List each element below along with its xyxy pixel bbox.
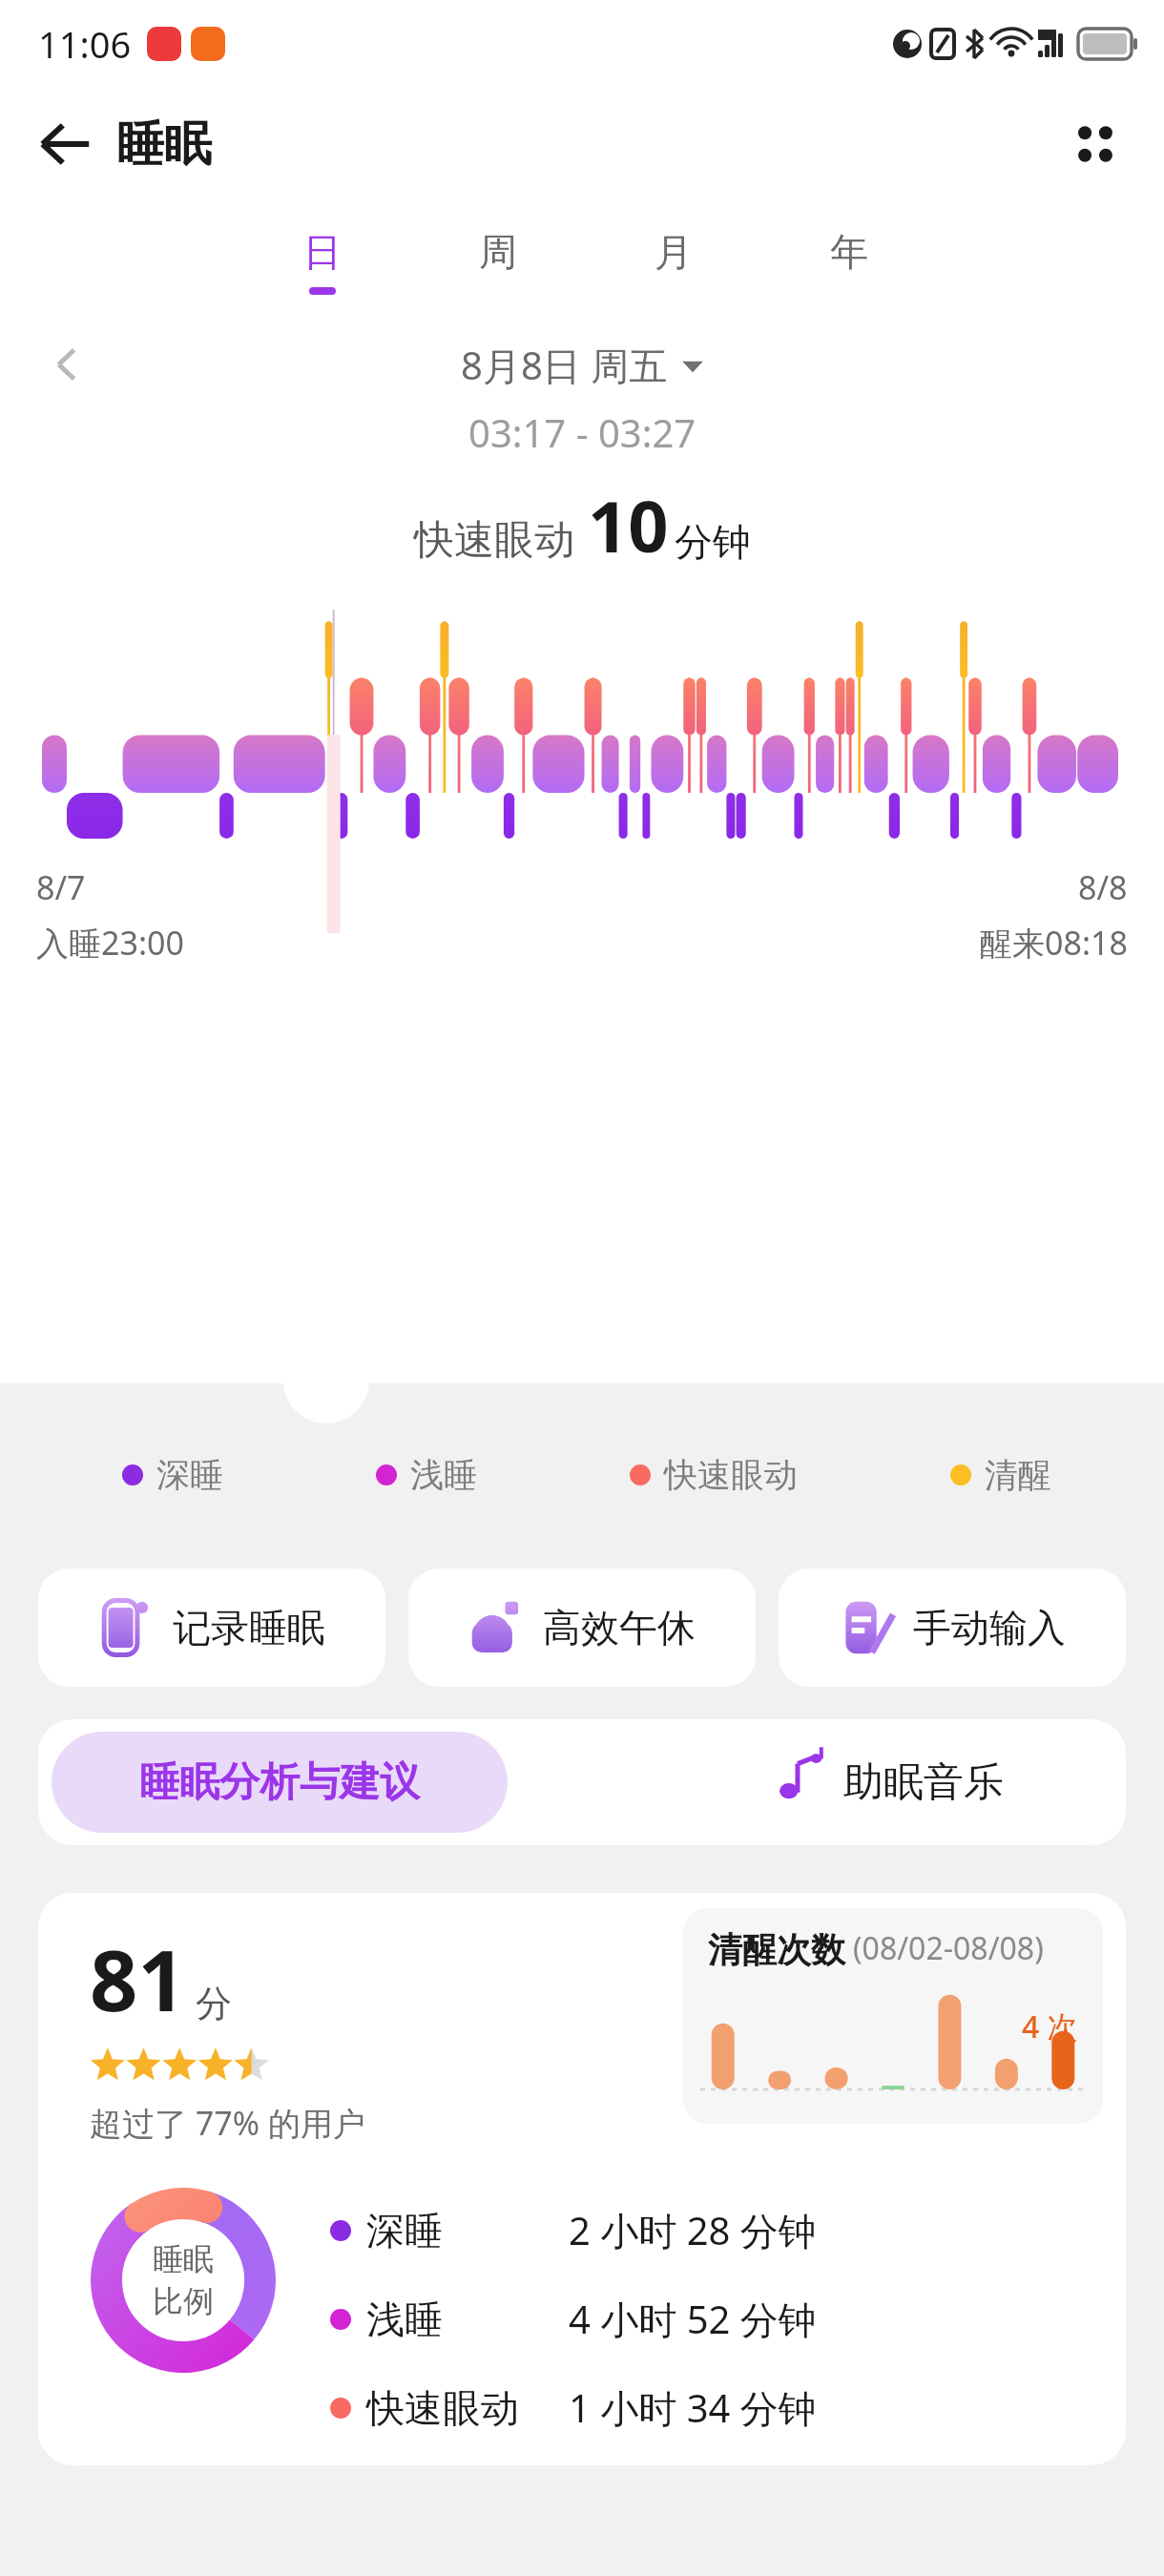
button[interactable]: 年 <box>821 228 878 295</box>
button[interactable]: 记录睡眠 <box>38 1568 385 1687</box>
staticText: 超过了 77% 的用户 <box>90 2101 365 2145</box>
staticText: 4 次 <box>1022 2005 1078 2047</box>
staticText: 睡眠 <box>153 2240 214 2278</box>
staticText: 8/7 <box>36 865 86 909</box>
staticText: 入睡23:00 <box>36 921 184 965</box>
staticText: 高效午休 <box>543 1604 696 1652</box>
staticText: 日 <box>303 228 342 276</box>
button[interactable]: 高效午休 <box>408 1568 756 1687</box>
staticText: 助眠音乐 <box>843 1757 1004 1808</box>
staticText: 手动输入 <box>913 1604 1066 1652</box>
staticText: 清醒 <box>985 1454 1051 1496</box>
button[interactable]: 月 <box>645 228 702 295</box>
staticText: 快速眼动 <box>664 1454 798 1496</box>
staticText: 记录睡眠 <box>173 1604 325 1652</box>
button[interactable]: 助眠音乐 <box>779 1756 1004 1808</box>
staticText: 11:06 <box>38 19 132 69</box>
staticText: 81 <box>90 1922 186 2036</box>
staticText: 月 <box>655 228 693 276</box>
staticText: 浅睡 <box>410 1454 477 1496</box>
staticText: 03:17 - 03:27 <box>468 406 696 458</box>
button[interactable]: More options <box>1051 100 1139 188</box>
button[interactable]: 睡眠分析与建议 <box>52 1732 508 1833</box>
staticText: 2 小时 28 分钟 <box>569 2204 817 2256</box>
staticText: (08/02-08/08) <box>853 1927 1044 1969</box>
staticText: 睡眠 <box>116 114 212 175</box>
staticText: 年 <box>830 228 868 276</box>
button[interactable]: 手动输入 <box>779 1568 1126 1687</box>
staticText: 深睡 <box>366 2207 443 2254</box>
staticText: 8月8日 周五 <box>461 339 668 391</box>
button[interactable]: Back <box>19 98 111 190</box>
staticText: 醒来08:18 <box>980 921 1128 965</box>
staticText: 1 小时 34 分钟 <box>569 2381 817 2434</box>
staticText: 浅睡 <box>366 2296 443 2343</box>
staticText: 快速眼动 <box>366 2384 519 2432</box>
staticText: 快速眼动 <box>414 515 574 566</box>
staticText: 周 <box>479 228 517 276</box>
button[interactable]: 日 <box>294 228 351 295</box>
button[interactable]: 周 <box>469 228 527 295</box>
staticText: 比例 <box>153 2282 214 2320</box>
staticText: 4 小时 52 分钟 <box>569 2293 817 2345</box>
staticText: 深睡 <box>156 1454 223 1496</box>
staticText: 8/8 <box>1078 865 1128 909</box>
button[interactable]: 8月8日 周五 <box>461 339 704 391</box>
button[interactable]: Previous day <box>31 328 103 401</box>
staticText: 清醒次数 <box>708 1928 845 1971</box>
staticText: 分钟 <box>675 518 751 566</box>
staticText: 分 <box>196 1981 232 2026</box>
staticText: 10 <box>588 477 669 573</box>
staticText: 睡眠分析与建议 <box>139 1757 420 1808</box>
